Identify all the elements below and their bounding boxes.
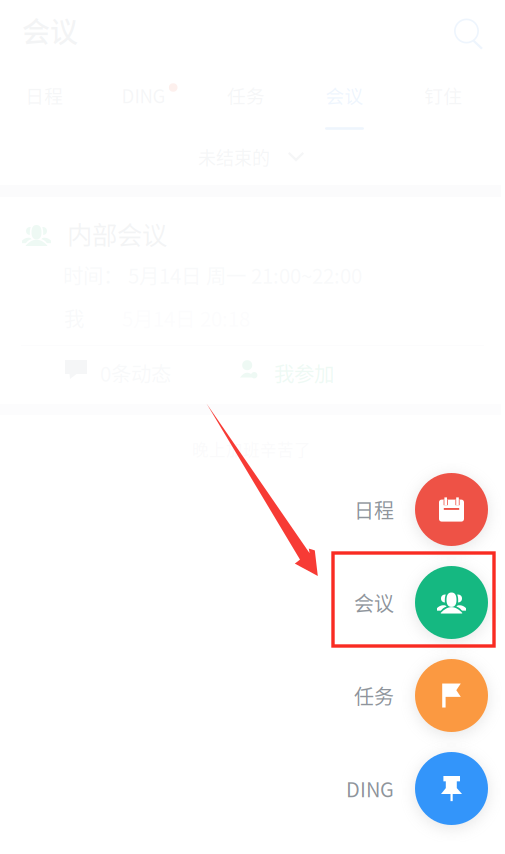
button[interactable]: 未结束的 <box>198 144 304 170</box>
button[interactable]: 会议 <box>326 556 488 649</box>
staticText: 未结束的 <box>198 144 270 170</box>
staticText: 任务 <box>227 82 265 109</box>
staticText: 会议 <box>354 588 394 617</box>
staticText: DING <box>346 774 394 803</box>
staticText: 会议 <box>22 10 78 50</box>
button[interactable]: 日程 <box>326 463 488 556</box>
staticText: 会议 <box>325 82 363 109</box>
staticText: 钉住 <box>424 82 462 109</box>
staticText: 晚上加班辛苦了 <box>192 437 311 461</box>
button[interactable]: 任务 <box>326 649 488 742</box>
staticText: 任务 <box>354 681 394 710</box>
button[interactable]: 搜索 <box>452 17 485 51</box>
staticText: DING <box>121 82 165 109</box>
staticText: 日程 <box>25 82 63 109</box>
staticText: 我参加 <box>274 358 334 387</box>
staticText: 内部会议 <box>67 215 167 252</box>
button[interactable]: 会议 <box>298 82 390 130</box>
staticText: 日程 <box>354 495 394 524</box>
button[interactable]: DING <box>326 742 488 835</box>
